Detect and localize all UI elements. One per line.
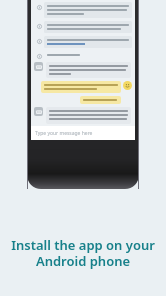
button[interactable]: Agent avatar <box>34 62 132 78</box>
other: Agent avatar <box>34 107 43 116</box>
button[interactable] <box>34 96 132 104</box>
button[interactable]: Your avatar <box>34 81 132 93</box>
button[interactable]: Type your message here <box>31 126 135 140</box>
staticText: Type your message here <box>35 130 93 137</box>
button[interactable] <box>34 51 132 59</box>
button[interactable] <box>34 21 132 33</box>
button[interactable] <box>34 2 132 18</box>
button[interactable]: Report Abuse Form link <box>34 36 132 48</box>
button[interactable]: Agent avatar <box>34 107 132 124</box>
other: Your avatar <box>123 81 132 90</box>
button[interactable]: Install the app on your Android phone <box>0 236 166 269</box>
other: Agent avatar <box>34 62 43 71</box>
